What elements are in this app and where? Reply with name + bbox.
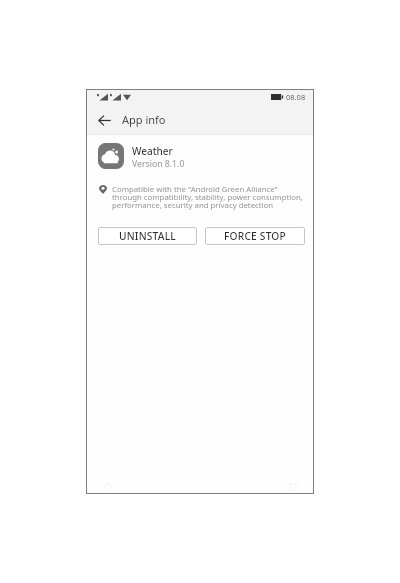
staticText: Version 8.1.0	[132, 158, 185, 170]
button[interactable]: FORCE STOP	[205, 227, 305, 245]
button[interactable]: UNINSTALL	[98, 227, 197, 245]
staticText: Weather	[132, 144, 173, 158]
staticText: 08.08	[286, 92, 306, 102]
staticText: FORCE STOP	[224, 229, 286, 243]
button[interactable]: Back	[95, 111, 113, 129]
staticText: App info	[122, 112, 166, 127]
staticText: Compatible with the "Android Green Allia…	[112, 184, 303, 210]
staticText: UNINSTALL	[119, 229, 176, 243]
button[interactable]: Recents	[287, 481, 299, 493]
